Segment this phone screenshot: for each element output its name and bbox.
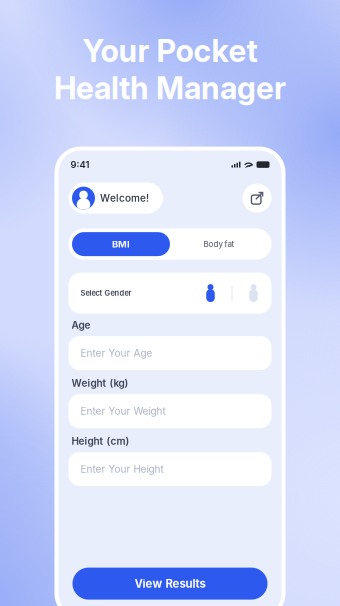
button[interactable]: Enter Your Weight bbox=[68, 394, 271, 428]
staticText: Age bbox=[71, 319, 90, 331]
staticText: Body fat bbox=[203, 239, 234, 249]
button[interactable]: Enter Your Age bbox=[68, 336, 271, 370]
button[interactable]: Enter Your Height bbox=[68, 452, 271, 486]
staticText: BMI bbox=[112, 238, 130, 250]
staticText: Enter Your Weight bbox=[80, 405, 165, 417]
staticText: Health Manager bbox=[54, 69, 286, 107]
button[interactable]: View Results bbox=[72, 568, 267, 600]
button[interactable]: Body fat bbox=[170, 232, 268, 256]
staticText: View Results bbox=[134, 577, 205, 590]
button[interactable]: BMI bbox=[72, 232, 170, 256]
staticText: Select Gender bbox=[80, 289, 131, 298]
button[interactable]: Female bbox=[247, 283, 259, 303]
staticText: Weight (kg) bbox=[71, 377, 128, 389]
staticText: Enter Your Height bbox=[80, 463, 163, 475]
staticText: Your Pocket bbox=[82, 32, 257, 69]
staticText: 9:41 bbox=[70, 159, 89, 170]
staticText: Welcome! bbox=[100, 192, 149, 204]
button[interactable]: Share bbox=[242, 184, 271, 213]
staticText: Height (cm) bbox=[71, 435, 129, 447]
staticText: Enter Your Age bbox=[80, 347, 152, 359]
button[interactable]: Male bbox=[204, 283, 216, 303]
button[interactable]: Welcome! bbox=[68, 183, 163, 214]
